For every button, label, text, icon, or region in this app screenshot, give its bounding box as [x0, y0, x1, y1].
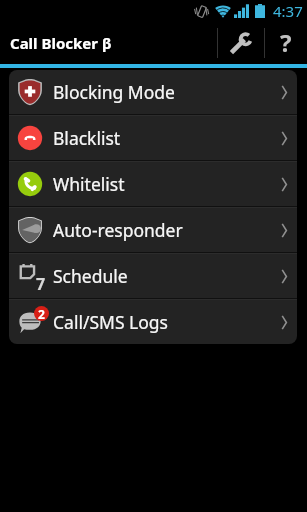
staticText: Blocking Mode: [53, 80, 175, 104]
staticText: 2: [38, 306, 45, 321]
button[interactable]: Help: [265, 22, 307, 64]
button[interactable]: Whitelist: [9, 162, 297, 206]
staticText: Whitelist: [53, 172, 125, 196]
staticText: Schedule: [53, 264, 128, 288]
staticText: 7: [36, 273, 46, 295]
button[interactable]: 2: [9, 300, 297, 344]
button[interactable]: Settings: [218, 22, 264, 64]
button[interactable]: 7: [9, 254, 297, 298]
button[interactable]: Auto-responder: [9, 208, 297, 252]
staticText: Call/SMS Logs: [53, 310, 168, 334]
staticText: Auto-responder: [53, 218, 183, 242]
staticText: ?: [280, 26, 292, 59]
staticText: Call Blocker β: [10, 33, 112, 53]
staticText: Blacklist: [53, 126, 121, 150]
button[interactable]: Blacklist: [9, 116, 297, 160]
staticText: 4:37: [273, 1, 303, 21]
button[interactable]: Blocking Mode: [9, 70, 297, 114]
